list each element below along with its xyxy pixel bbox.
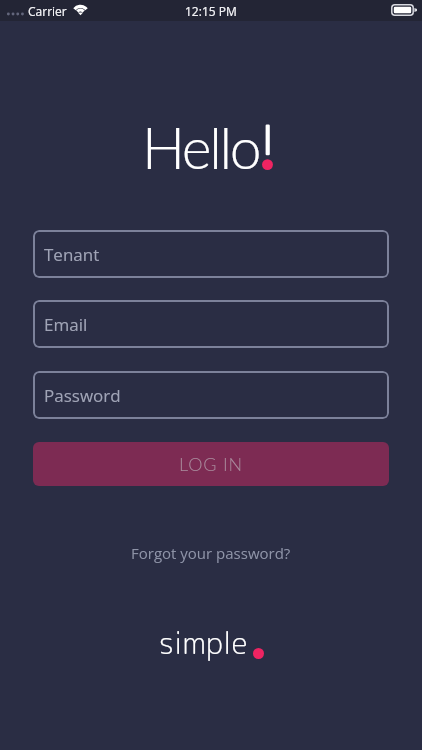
staticText: Hello xyxy=(142,113,260,181)
button[interactable]: Email xyxy=(33,300,389,348)
staticText: simple xyxy=(159,622,248,664)
button[interactable]: LOG IN xyxy=(33,442,389,486)
staticText: LOG IN xyxy=(179,453,243,475)
staticText: 12:15 PM xyxy=(185,3,237,19)
staticText: Forgot your password? xyxy=(131,543,291,563)
button[interactable]: Password xyxy=(33,371,389,419)
staticText: Password xyxy=(44,384,121,407)
staticText: Email xyxy=(44,313,88,336)
button[interactable]: Tenant xyxy=(33,230,389,278)
button[interactable]: Forgot your password? xyxy=(123,541,299,565)
staticText: Carrier xyxy=(28,3,67,19)
staticText: Tenant xyxy=(44,243,100,266)
